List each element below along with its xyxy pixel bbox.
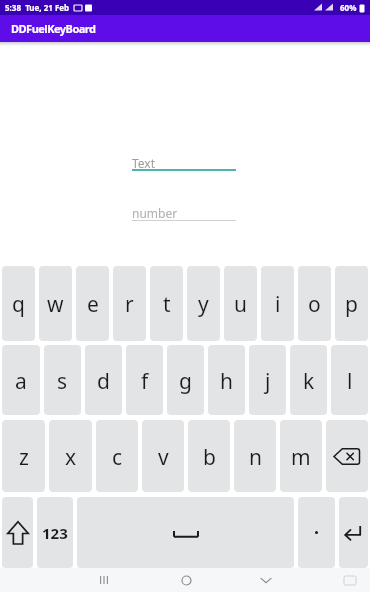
button[interactable]: o — [298, 266, 331, 341]
button[interactable]: h — [208, 345, 245, 415]
staticText: y — [198, 290, 209, 319]
button[interactable]: z — [2, 420, 45, 492]
staticText: number — [132, 205, 178, 221]
staticText: l — [347, 367, 353, 396]
button[interactable]: j — [249, 345, 286, 415]
button[interactable]: n — [234, 420, 276, 492]
button[interactable]: g — [167, 345, 204, 415]
button[interactable]: v — [142, 420, 184, 492]
staticText: x — [65, 443, 77, 472]
staticText: g — [179, 367, 192, 396]
button[interactable]: q — [2, 266, 35, 341]
staticText: v — [158, 443, 169, 472]
staticText: i — [275, 290, 281, 319]
staticText: f — [141, 367, 149, 396]
staticText: z — [19, 443, 29, 472]
staticText: h — [220, 367, 233, 396]
button[interactable]: r — [113, 266, 146, 341]
staticText: k — [303, 367, 315, 396]
button[interactable]: y — [187, 266, 220, 341]
staticText: e — [87, 290, 99, 319]
staticText: Text — [132, 155, 156, 171]
button[interactable]: s — [44, 345, 81, 415]
staticText: s — [57, 367, 68, 396]
button[interactable] — [326, 420, 368, 492]
staticText: o — [308, 290, 321, 319]
staticText: 60% — [340, 2, 357, 13]
button[interactable]: t — [150, 266, 183, 341]
button[interactable]: 123 — [37, 497, 73, 568]
button[interactable]: w — [39, 266, 72, 341]
button[interactable]: p — [335, 266, 368, 341]
button[interactable]: d — [85, 345, 122, 415]
staticText: u — [234, 290, 247, 319]
staticText: q — [12, 290, 25, 319]
staticText: b — [203, 443, 216, 472]
button[interactable]: x — [49, 420, 92, 492]
staticText: p — [345, 290, 358, 319]
button[interactable] — [338, 572, 362, 588]
button[interactable]: number — [132, 205, 236, 223]
button[interactable] — [77, 497, 294, 568]
staticText: 123 — [42, 523, 68, 543]
button[interactable]: a — [2, 345, 40, 415]
staticText: d — [97, 367, 110, 396]
staticText: DDFuelKeyBoard — [11, 21, 96, 36]
button[interactable]: b — [188, 420, 230, 492]
staticText: a — [15, 367, 27, 396]
button[interactable]: c — [96, 420, 138, 492]
button[interactable]: k — [290, 345, 327, 415]
staticText: c — [112, 443, 123, 472]
button[interactable] — [298, 497, 335, 568]
button[interactable] — [174, 572, 198, 588]
button[interactable]: l — [331, 345, 368, 415]
button[interactable]: Text — [132, 155, 236, 173]
button[interactable]: u — [224, 266, 257, 341]
button[interactable]: i — [261, 266, 294, 341]
staticText: n — [249, 443, 262, 472]
button[interactable] — [2, 497, 33, 568]
staticText: t — [163, 290, 171, 319]
staticText: 5:38 Tue, 21 Feb — [5, 2, 70, 13]
button[interactable]: e — [76, 266, 109, 341]
button[interactable] — [339, 497, 368, 568]
button[interactable] — [254, 572, 278, 588]
button[interactable]: m — [280, 420, 322, 492]
staticText: j — [265, 367, 271, 396]
button[interactable]: f — [126, 345, 163, 415]
staticText: r — [125, 290, 134, 319]
button[interactable] — [92, 572, 116, 588]
staticText: w — [47, 290, 64, 319]
staticText: m — [291, 443, 311, 472]
